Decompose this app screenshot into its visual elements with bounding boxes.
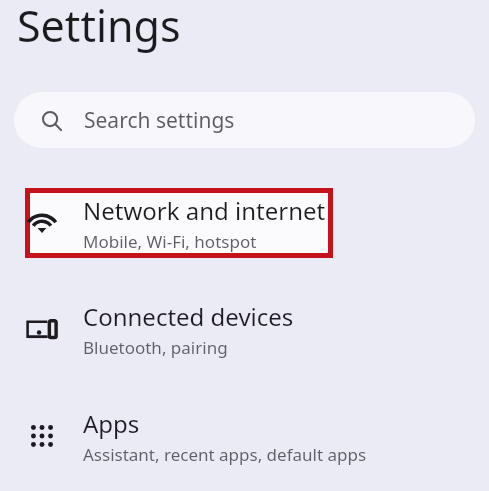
staticText: Apps (83, 407, 140, 440)
staticText: Mobile, Wi-Fi, hotspot (83, 230, 257, 253)
button[interactable]: Connected devices (0, 294, 489, 364)
button[interactable]: Network and internet (0, 188, 489, 258)
other: Connected devices (0, 294, 83, 364)
staticText: Search settings (84, 106, 235, 135)
button[interactable]: Apps (0, 401, 489, 471)
staticText: Bluetooth, pairing (83, 336, 228, 359)
staticText: Assistant, recent apps, default apps (83, 443, 367, 466)
staticText: Settings (17, 0, 181, 55)
staticText: Connected devices (83, 300, 294, 333)
staticText: Network and internet (83, 194, 326, 227)
other: Network and internet (0, 188, 83, 258)
other: Apps (0, 401, 83, 471)
button[interactable]: Search settings (14, 92, 475, 148)
